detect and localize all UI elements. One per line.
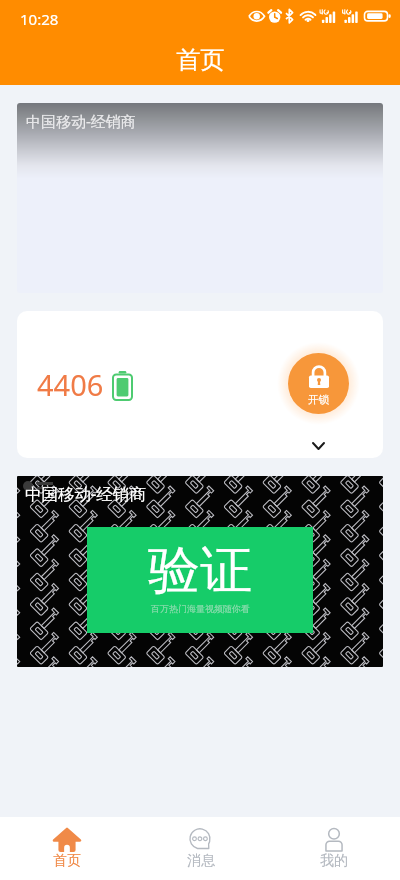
staticText: 消息 xyxy=(187,852,215,870)
other: 展开 xyxy=(313,443,324,449)
staticText: 中国移动-经销商 xyxy=(26,111,136,131)
button[interactable]: 消息 xyxy=(134,817,267,880)
staticText: 开锁 xyxy=(308,393,329,406)
staticText: 百万热门海量视频随你看 xyxy=(151,603,250,614)
staticText: 4406 xyxy=(37,365,104,404)
staticText: 中国移动-经销商 xyxy=(25,482,146,505)
staticText: 我的 xyxy=(320,852,348,870)
staticText: 验证 xyxy=(148,538,252,604)
staticText: 10:28 xyxy=(20,9,59,29)
button[interactable]: 首页 xyxy=(0,817,134,880)
staticText: 首页 xyxy=(176,44,225,75)
staticText: 首页 xyxy=(53,852,81,870)
button[interactable]: 开锁 xyxy=(288,353,349,414)
button[interactable]: 我的 xyxy=(267,817,400,880)
